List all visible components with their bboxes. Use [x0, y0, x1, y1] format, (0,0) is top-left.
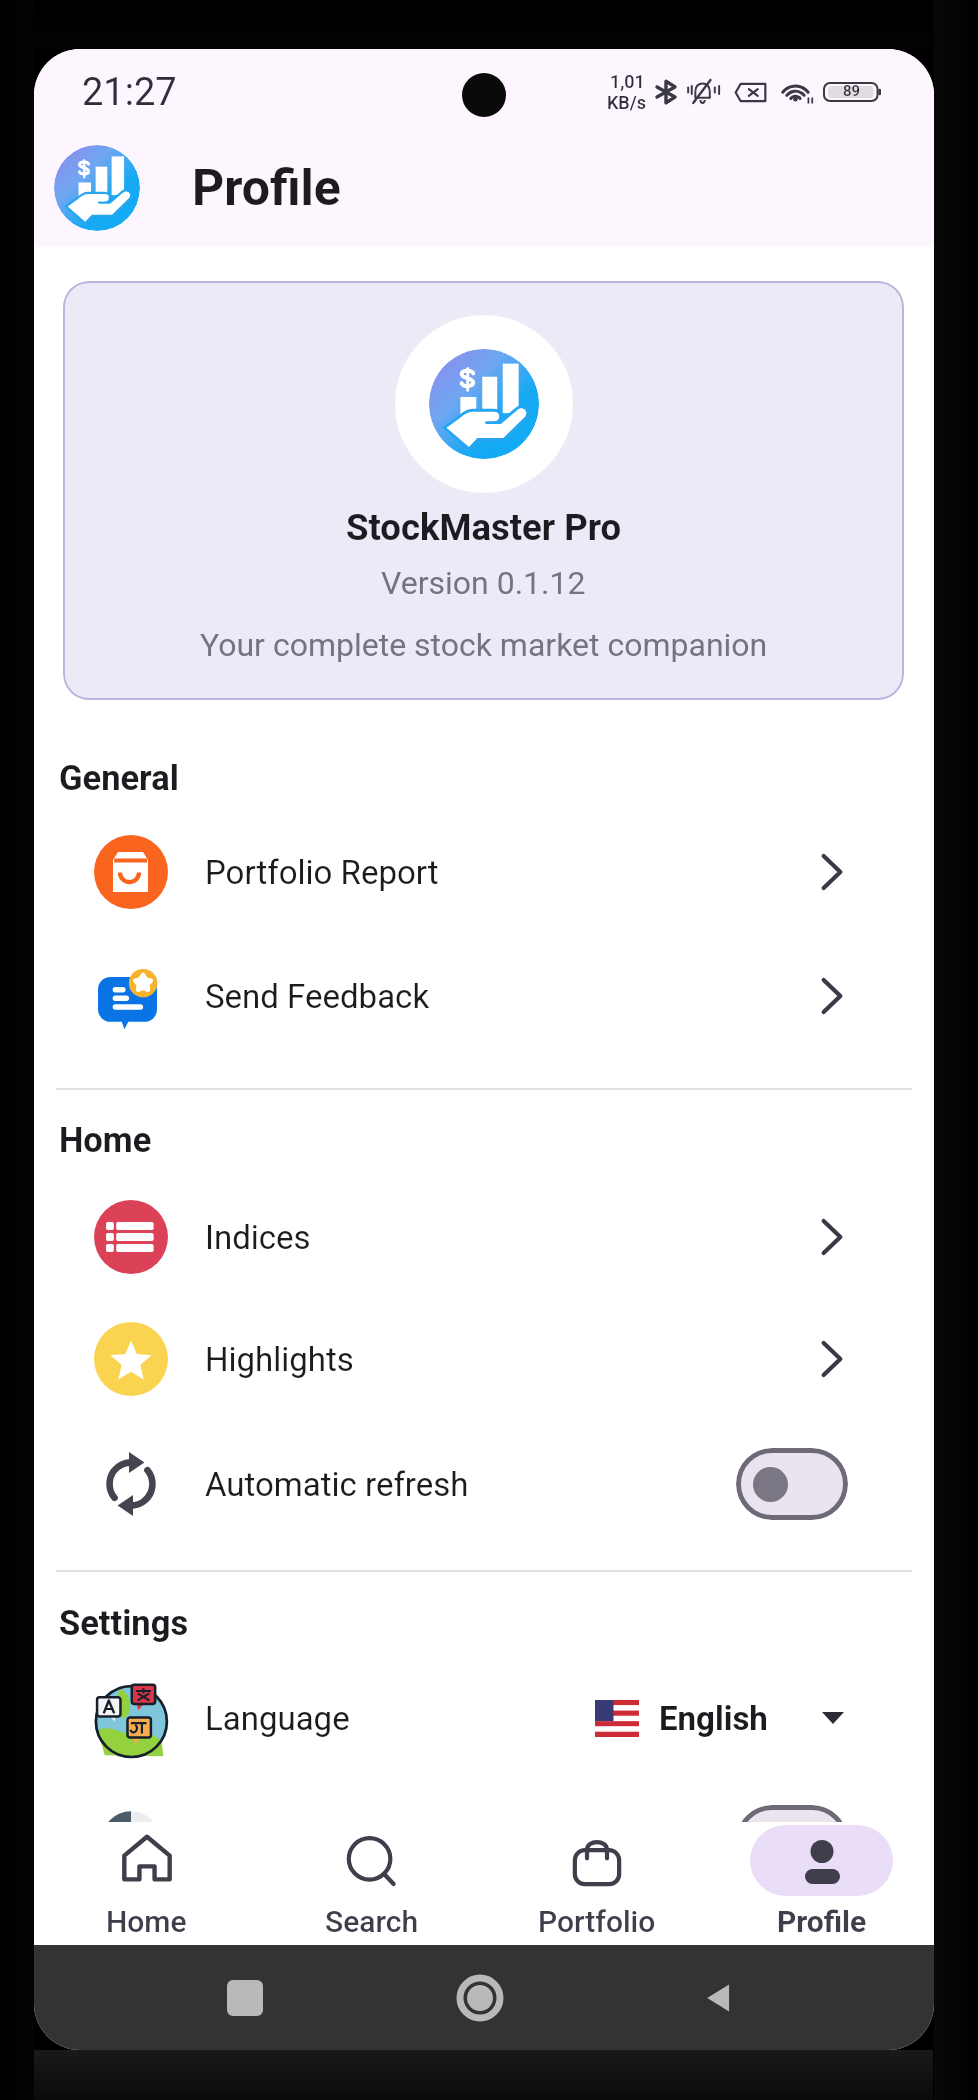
staticText: General	[59, 758, 179, 798]
staticText: Settings	[59, 1603, 189, 1643]
staticText: Version 0.1.12	[381, 564, 586, 602]
button[interactable]: Portfolio Report	[34, 821, 934, 923]
staticText: Language	[205, 1699, 350, 1738]
staticText: Your complete stock market companion	[200, 626, 768, 664]
staticText: Profile	[192, 159, 341, 218]
staticText: 21:27	[82, 70, 177, 115]
button[interactable]: Profile	[709, 1822, 934, 1945]
staticText: Automatic refresh	[205, 1465, 469, 1504]
staticText: Portfolio Report	[205, 853, 439, 892]
button[interactable]: Language	[34, 1667, 934, 1769]
staticText: Profile	[777, 1904, 867, 1939]
other: Home	[456, 1974, 504, 2022]
staticText: Portfolio	[538, 1904, 656, 1939]
staticText: Home	[106, 1904, 187, 1939]
button[interactable]: Portfolio	[484, 1822, 709, 1945]
staticText: Indices	[205, 1218, 311, 1257]
staticText: Home	[59, 1120, 152, 1160]
button[interactable]: Theme	[34, 1790, 934, 1822]
button[interactable]: Automatic refresh	[34, 1433, 934, 1535]
staticText: Highlights	[205, 1340, 354, 1379]
button[interactable]: Search	[259, 1822, 484, 1945]
staticText: 89	[843, 82, 861, 100]
button[interactable]: Highlights	[34, 1308, 934, 1410]
button[interactable]: Indices	[34, 1186, 934, 1288]
staticText: StockMaster Pro	[346, 506, 622, 549]
staticText: English	[659, 1699, 768, 1738]
staticText: 1,01	[610, 71, 645, 92]
button[interactable]: Send Feedback	[34, 945, 934, 1047]
other: Back	[698, 1977, 740, 2019]
staticText: KB/s	[607, 92, 647, 113]
other: Recent apps	[227, 1980, 263, 2016]
staticText: Search	[325, 1904, 419, 1939]
staticText: Send Feedback	[205, 977, 430, 1016]
button[interactable]: Home	[34, 1822, 259, 1945]
